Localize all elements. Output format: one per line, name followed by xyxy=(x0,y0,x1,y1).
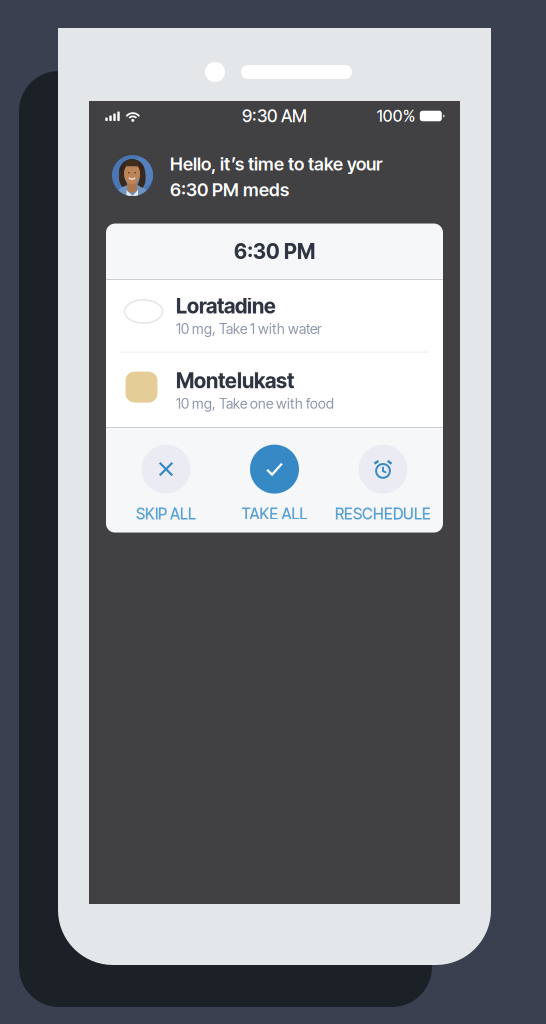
button[interactable]: SKIP ALL xyxy=(106,428,226,533)
staticText: SKIP ALL xyxy=(136,505,196,523)
staticText: RESCHEDULE xyxy=(335,505,431,523)
button[interactable]: Montelukast xyxy=(106,353,443,428)
staticText: 100% xyxy=(377,106,416,126)
staticText: Hello, it’s time to take your xyxy=(170,153,382,175)
staticText: 9:30 AM xyxy=(242,105,307,126)
staticText: 6:30 PM xyxy=(234,239,315,264)
staticText: Montelukast xyxy=(176,368,294,393)
staticText: Loratadine xyxy=(176,293,276,318)
staticText: 10 mg, Take one with food xyxy=(176,395,334,412)
staticText: 6:30 PM meds xyxy=(170,179,289,201)
button[interactable]: Loratadine xyxy=(106,279,443,351)
button[interactable]: RESCHEDULE xyxy=(323,428,443,533)
button[interactable]: TAKE ALL xyxy=(226,428,323,533)
staticText: 10 mg, Take 1 with water xyxy=(176,320,322,337)
staticText: TAKE ALL xyxy=(241,505,307,523)
